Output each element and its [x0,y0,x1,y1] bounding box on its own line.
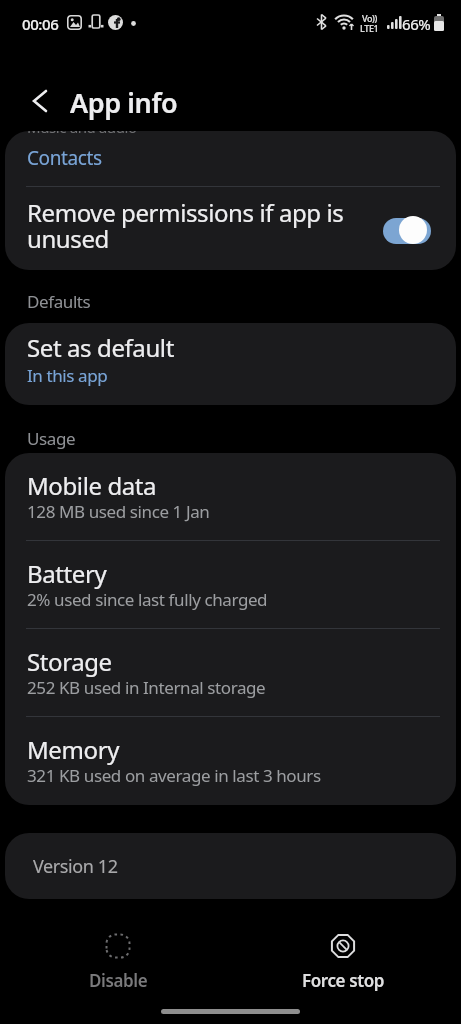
staticText: Usage [27,427,76,450]
staticText: App info [70,84,178,121]
staticText: Battery [27,557,107,590]
staticText: Mobile data [27,469,157,502]
staticText: Remove permissions if app is unused [27,196,383,255]
staticText: Force stop [302,969,384,992]
staticText: Set as default [27,331,174,364]
button[interactable]: Remove permissions if app is unused [5,187,456,270]
staticText: Vo)) [362,12,377,24]
staticText: Music and audio [27,131,137,137]
button[interactable]: Set as default [5,323,456,405]
button[interactable]: Force stop [293,933,393,1003]
staticText: Disable [89,969,148,992]
staticText: 128 MB used since 1 Jan [27,500,210,523]
button[interactable]: Mobile data [5,453,456,540]
button[interactable]: Storage [5,629,456,716]
staticText: 321 KB used on average in last 3 hours [27,764,321,787]
staticText: Storage [27,645,112,678]
staticText: Memory [27,733,120,766]
button[interactable] [20,80,60,120]
button[interactable]: Battery [5,541,456,628]
button[interactable]: Contacts [5,139,456,185]
staticText: 66% [402,14,431,34]
staticText: 252 KB used in Internal storage [27,676,266,699]
staticText: Version 12 [33,854,118,879]
staticText: Defaults [27,290,91,313]
button[interactable]: Disable [68,933,168,1003]
staticText: In this app [27,364,108,387]
staticText: Contacts [27,145,102,171]
button[interactable]: Memory [5,717,456,804]
staticText: 00:06 [22,14,59,34]
staticText: 2% used since last fully charged [27,588,268,611]
staticText: LTE1 [360,22,379,34]
